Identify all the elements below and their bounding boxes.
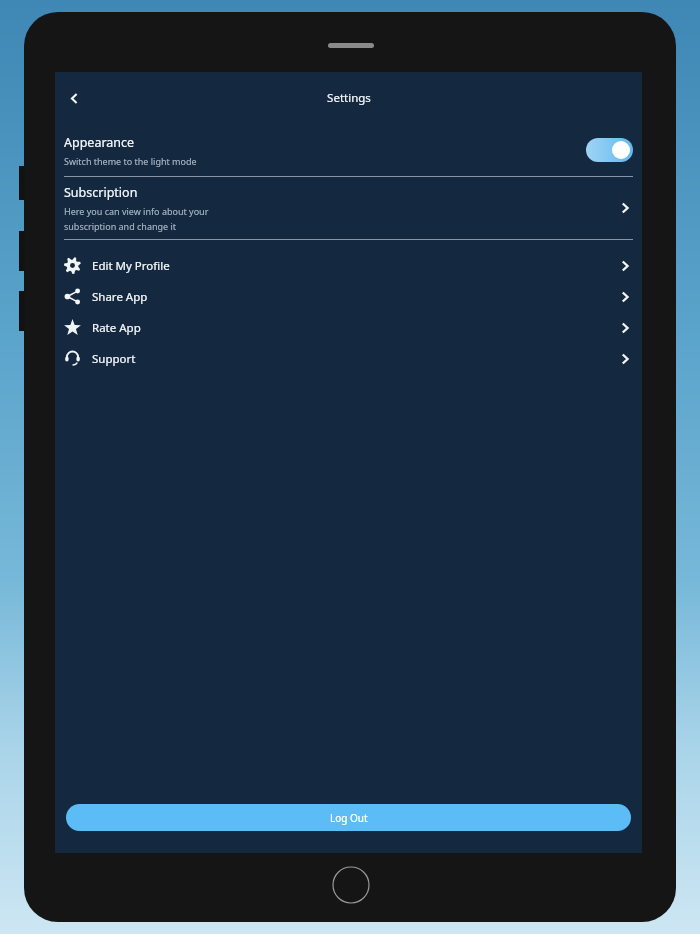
- staticText: Rate App: [92, 320, 141, 336]
- staticText: Appearance: [64, 134, 135, 151]
- staticText: Support: [92, 351, 136, 367]
- button[interactable]: Appearance: [64, 124, 633, 176]
- button[interactable]: Back: [59, 83, 89, 113]
- staticText: Log Out: [330, 811, 368, 825]
- staticText: Edit My Profile: [92, 258, 170, 274]
- staticText: Switch theme to the light mode: [64, 155, 197, 167]
- staticText: subscription and change it: [64, 220, 177, 232]
- button[interactable]: Rate App: [64, 312, 633, 343]
- button[interactable]: Share App: [64, 281, 633, 312]
- staticText: Settings: [327, 90, 371, 106]
- staticText: Share App: [92, 289, 148, 305]
- button[interactable]: Log Out: [66, 804, 631, 831]
- button[interactable]: Support: [64, 343, 633, 374]
- staticText: Here you can view info about your: [64, 205, 209, 217]
- button[interactable]: Toggle light mode: [586, 138, 633, 162]
- button[interactable]: Subscription: [64, 177, 633, 239]
- button[interactable]: Edit My Profile: [64, 250, 633, 281]
- staticText: Subscription: [64, 184, 138, 201]
